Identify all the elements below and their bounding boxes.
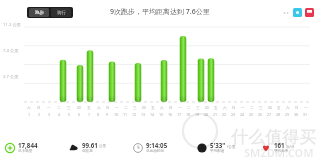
staticText: 平均配速 xyxy=(210,149,225,154)
staticText: 六 xyxy=(27,106,31,111)
staticText: 24 xyxy=(240,112,245,117)
staticText: 四 xyxy=(268,106,272,111)
staticText: 总距离 xyxy=(82,149,93,154)
staticText: 23 xyxy=(231,112,236,117)
staticText: 什么值得买 xyxy=(231,127,316,148)
staticText: 二 xyxy=(57,106,61,111)
staticText: 19 xyxy=(195,112,200,117)
staticText: 日 xyxy=(106,106,110,111)
staticText: 7.4 公里 xyxy=(3,48,19,54)
button[interactable]: 161 xyxy=(256,141,320,154)
button[interactable]: 99.61 xyxy=(64,141,128,154)
staticText: 1 xyxy=(28,112,31,117)
button[interactable]: 9:14:05 xyxy=(128,141,192,154)
staticText: 13 xyxy=(141,112,146,117)
staticText: 四 xyxy=(142,106,146,111)
staticText: 16 xyxy=(168,112,173,117)
staticText: 25 xyxy=(249,112,254,117)
staticText: 31 xyxy=(303,112,308,117)
staticText: 8 xyxy=(97,112,100,117)
staticText: 五 xyxy=(214,106,218,111)
button[interactable]: Share to Twitter xyxy=(293,8,302,17)
staticText: 6 xyxy=(78,112,81,117)
staticText: 11 xyxy=(123,112,128,117)
staticText: 一 xyxy=(47,106,51,111)
staticText: 一 xyxy=(115,106,119,111)
staticText: /公里 xyxy=(227,144,236,149)
staticText: 五 xyxy=(151,106,155,111)
staticText: 一 xyxy=(178,106,182,111)
staticText: 5 xyxy=(68,112,71,117)
staticText: 四 xyxy=(77,106,81,111)
staticText: 日 xyxy=(232,106,236,111)
staticText: 29 xyxy=(285,112,290,117)
staticText: 三 xyxy=(196,106,200,111)
staticText: 10 xyxy=(114,112,119,117)
staticText: 平均心率 xyxy=(274,149,289,154)
staticText: 次/分 xyxy=(286,144,295,149)
staticText: 四 xyxy=(205,106,209,111)
staticText: 27 xyxy=(267,112,272,117)
staticText: SMZDM.COM xyxy=(244,145,314,160)
staticText: 15 xyxy=(159,112,164,117)
staticText: 六 xyxy=(223,106,227,111)
staticText: 总卡路里 xyxy=(18,149,33,154)
staticText: 三 xyxy=(259,106,263,111)
staticText: 二 xyxy=(187,106,191,111)
staticText: 20 xyxy=(204,112,209,117)
staticText: 日 xyxy=(169,106,173,111)
staticText: 2 xyxy=(38,112,41,117)
staticText: 三 xyxy=(67,106,71,111)
button[interactable]: 跑步 xyxy=(27,7,73,18)
staticText: 161 xyxy=(274,141,285,149)
staticText: 12 xyxy=(132,112,137,117)
staticText: 二 xyxy=(250,106,254,111)
button[interactable]: Share to Weibo xyxy=(305,8,314,17)
staticText: 99.61 xyxy=(82,141,98,149)
staticText: 日 xyxy=(37,106,41,111)
staticText: 9 xyxy=(106,112,109,117)
staticText: 六 xyxy=(160,106,164,111)
staticText: 3.7 公里 xyxy=(3,74,19,80)
staticText: 3 xyxy=(48,112,51,117)
staticText: 日 xyxy=(295,106,299,111)
staticText: 22 xyxy=(222,112,227,117)
staticText: 26 xyxy=(258,112,263,117)
staticText: 28 xyxy=(276,112,281,117)
staticText: 公里 xyxy=(99,144,107,149)
staticText: 17,844 xyxy=(18,141,38,149)
staticText: 总运动时间 xyxy=(146,149,164,154)
staticText: 五 xyxy=(277,106,281,111)
button[interactable]: 17,844 xyxy=(0,141,64,154)
button[interactable]: 跑步 xyxy=(29,8,49,17)
staticText: 六 xyxy=(97,106,101,111)
staticText: 跑步 xyxy=(35,10,44,16)
staticText: 11.2 公里 xyxy=(3,22,21,28)
staticText: 一 xyxy=(241,106,245,111)
staticText: 9:14:05 xyxy=(146,141,168,149)
staticText: 三 xyxy=(133,106,137,111)
staticText: 五 xyxy=(87,106,91,111)
staticText: 4 xyxy=(58,112,61,117)
staticText: 30 xyxy=(294,112,299,117)
button[interactable]: 5'33" xyxy=(192,141,256,154)
staticText: 21 xyxy=(213,112,218,117)
button[interactable]: 骑行 xyxy=(51,8,71,17)
staticText: 7 xyxy=(88,112,91,117)
staticText: 14 xyxy=(150,112,155,117)
staticText: 二 xyxy=(124,106,128,111)
staticText: 骑行 xyxy=(57,10,66,16)
staticText: 5'33" xyxy=(210,141,226,149)
staticText: 一 xyxy=(304,106,308,111)
staticText: 9次跑步，平均距离达到 7.6公里 xyxy=(110,7,210,17)
staticText: 17 xyxy=(177,112,182,117)
staticText: 18 xyxy=(186,112,191,117)
staticText: 六 xyxy=(286,106,290,111)
